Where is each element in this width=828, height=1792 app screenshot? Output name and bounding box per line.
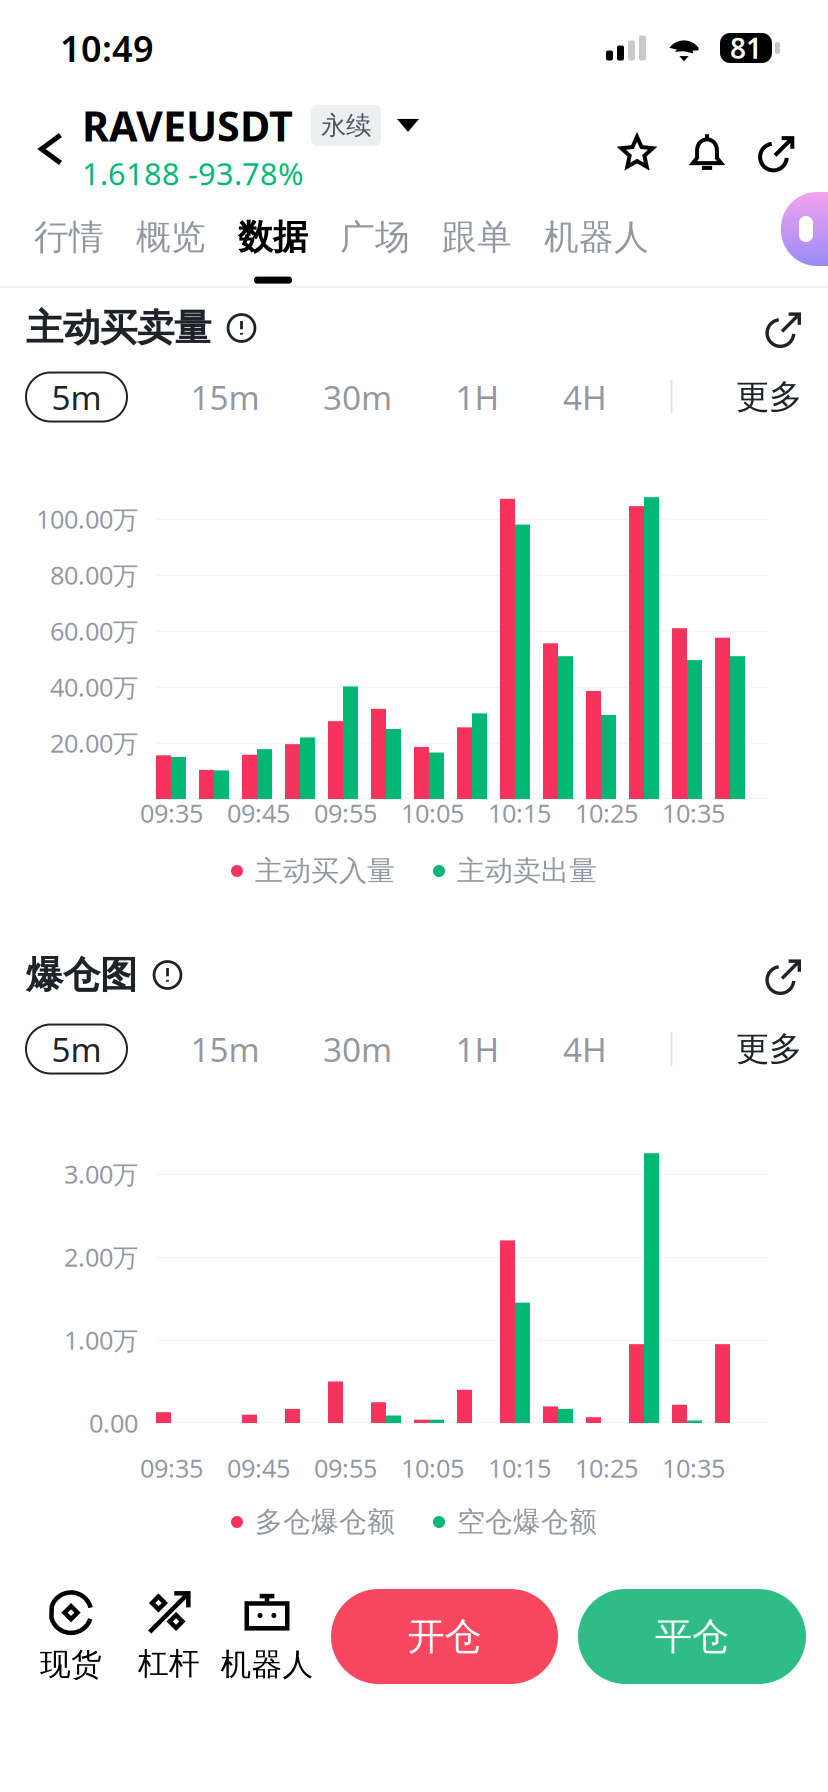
button[interactable]: 更多 — [736, 1028, 802, 1069]
staticText: 5m — [51, 1027, 101, 1071]
button[interactable]: 行情 — [18, 200, 120, 284]
button[interactable]: 现货 — [22, 1590, 120, 1683]
staticText: 跟单 — [442, 216, 512, 259]
staticText: 永续 — [321, 110, 371, 141]
staticText: 主动卖出量 — [457, 854, 597, 888]
staticText: 100.00万 — [36, 502, 138, 536]
staticText: 5m — [51, 375, 101, 419]
staticText: 1.6188 -93.78% — [82, 153, 303, 194]
staticText: 3.00万 — [64, 1157, 138, 1191]
staticText: 10:25 — [575, 1451, 638, 1485]
staticText: 10:25 — [575, 796, 638, 830]
staticText: 09:45 — [227, 1451, 290, 1485]
staticText: 09:55 — [314, 796, 377, 830]
staticText: 10:05 — [401, 796, 464, 830]
staticText: 主动买卖量 — [26, 305, 211, 351]
staticText: RAVEUSDT — [82, 98, 293, 153]
staticText: 09:35 — [140, 1451, 203, 1485]
staticText: 09:55 — [314, 1451, 377, 1485]
staticText: 广场 — [340, 216, 410, 259]
staticText: 机器人 — [544, 216, 649, 259]
staticText: 40.00万 — [50, 670, 138, 704]
button[interactable]: 数据 — [222, 200, 324, 284]
button[interactable]: 开仓 — [331, 1589, 558, 1684]
staticText: 10:49 — [60, 24, 154, 72]
button[interactable]: Share — [742, 117, 812, 187]
button[interactable]: Add to favourites — [602, 117, 672, 187]
staticText: 4H — [563, 1027, 607, 1071]
button[interactable]: 30m — [323, 375, 392, 419]
staticText: 杠杆 — [138, 1645, 200, 1682]
staticText: 10:15 — [488, 796, 551, 830]
staticText: 09:45 — [227, 796, 290, 830]
button[interactable]: 跟单 — [426, 200, 528, 284]
staticText: 4H — [563, 375, 607, 419]
staticText: 0.00 — [89, 1406, 138, 1440]
button[interactable]: 5m — [26, 1024, 127, 1073]
staticText: 10:35 — [662, 796, 725, 830]
staticText: 10:05 — [401, 1451, 464, 1485]
button[interactable]: Open full chart — [754, 945, 814, 1005]
button[interactable]: 杠杆 — [120, 1591, 218, 1682]
staticText: 更多 — [736, 1028, 802, 1069]
staticText: 主动买入量 — [255, 854, 395, 888]
staticText: 行情 — [34, 216, 104, 259]
staticText: 09:35 — [140, 796, 203, 830]
button[interactable]: Price alerts — [672, 117, 742, 187]
staticText: 81 — [730, 29, 762, 67]
staticText: 概览 — [136, 216, 206, 259]
button[interactable]: 4H — [563, 1027, 607, 1071]
staticText: 20.00万 — [50, 726, 138, 760]
staticText: 更多 — [736, 376, 802, 417]
button[interactable]: 5m — [26, 372, 127, 421]
button[interactable]: Back — [20, 96, 82, 202]
button[interactable]: Contract type — [293, 105, 419, 146]
staticText: 空仓爆仓额 — [457, 1505, 597, 1539]
button[interactable]: 更多 — [736, 376, 802, 417]
staticText: 15m — [190, 1027, 259, 1071]
staticText: 1H — [455, 375, 499, 419]
staticText: 1.00万 — [64, 1323, 138, 1357]
button[interactable]: 30m — [323, 1027, 392, 1071]
staticText: 机器人 — [220, 1646, 313, 1683]
staticText: 10:35 — [662, 1451, 725, 1485]
button[interactable]: 概览 — [120, 200, 222, 284]
staticText: 开仓 — [407, 1614, 481, 1659]
button[interactable]: 4H — [563, 375, 607, 419]
staticText: 60.00万 — [50, 614, 138, 648]
staticText: 30m — [323, 375, 392, 419]
button[interactable]: 1H — [455, 1027, 499, 1071]
staticText: 数据 — [238, 216, 308, 259]
button[interactable]: 15m — [190, 1027, 259, 1071]
staticText: 15m — [190, 375, 259, 419]
staticText: 80.00万 — [50, 558, 138, 592]
button[interactable]: 机器人 — [218, 1590, 316, 1683]
staticText: 10:15 — [488, 1451, 551, 1485]
button[interactable]: 1H — [455, 375, 499, 419]
staticText: 30m — [323, 1027, 392, 1071]
staticText: 2.00万 — [64, 1240, 138, 1274]
button[interactable]: 平仓 — [578, 1589, 806, 1684]
button[interactable]: 15m — [190, 375, 259, 419]
staticText: 多仓爆仓额 — [255, 1505, 395, 1539]
button[interactable]: AI assistant — [781, 192, 828, 266]
button[interactable]: Open full chart — [754, 298, 814, 358]
staticText: 现货 — [40, 1646, 102, 1683]
button[interactable]: 广场 — [324, 200, 426, 284]
staticText: 1H — [455, 1027, 499, 1071]
staticText: 爆仓图 — [26, 952, 137, 998]
button[interactable]: 机器人 — [528, 200, 665, 284]
staticText: 平仓 — [655, 1614, 729, 1659]
